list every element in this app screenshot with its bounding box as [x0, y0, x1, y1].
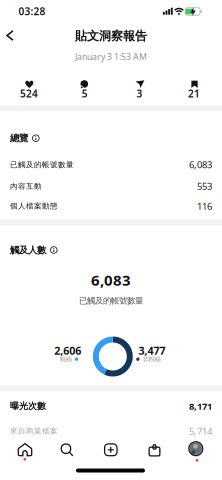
button[interactable]: Profile [186, 439, 206, 459]
staticText: 內容互動 [10, 181, 42, 191]
staticText: 曝光次數 [10, 400, 46, 412]
staticText: 8,171 [189, 400, 212, 412]
staticText: 粉絲 [60, 355, 72, 363]
staticText: 553 [197, 180, 212, 193]
staticText: 非粉絲 [143, 355, 161, 363]
staticText: 6,083 [189, 158, 212, 171]
button[interactable]: Home [14, 440, 36, 460]
staticText: 總覽 [10, 132, 28, 144]
staticText: 03:28 [18, 4, 45, 18]
staticText: 觸及人數 [10, 244, 46, 256]
button[interactable]: About these metrics [50, 247, 57, 253]
staticText: 5,714 [189, 425, 212, 437]
staticText: 來自商業檔案 [10, 426, 58, 436]
button[interactable]: Shop [145, 440, 164, 460]
button[interactable]: Back [1, 25, 19, 46]
staticText: 個人檔案動態 [10, 201, 58, 211]
button[interactable]: New post [101, 440, 121, 460]
staticText: 已觸及的帳號數量 [10, 160, 74, 169]
staticText: 3,477 [138, 343, 165, 358]
staticText: 524 [20, 87, 38, 100]
button[interactable]: About these metrics [32, 135, 39, 141]
staticText: 116 [197, 200, 212, 212]
staticText: 21 [188, 87, 200, 100]
staticText: 已觸及的帳號數量 [79, 295, 143, 306]
staticText: 2,606 [54, 343, 81, 358]
staticText: 貼文洞察報告 [75, 28, 147, 43]
staticText: 3 [136, 87, 142, 100]
button[interactable]: Search [57, 439, 77, 460]
staticText: January 3 1:53 AM [75, 51, 147, 62]
staticText: 5 [82, 87, 88, 100]
staticText: 6,083 [91, 270, 131, 290]
